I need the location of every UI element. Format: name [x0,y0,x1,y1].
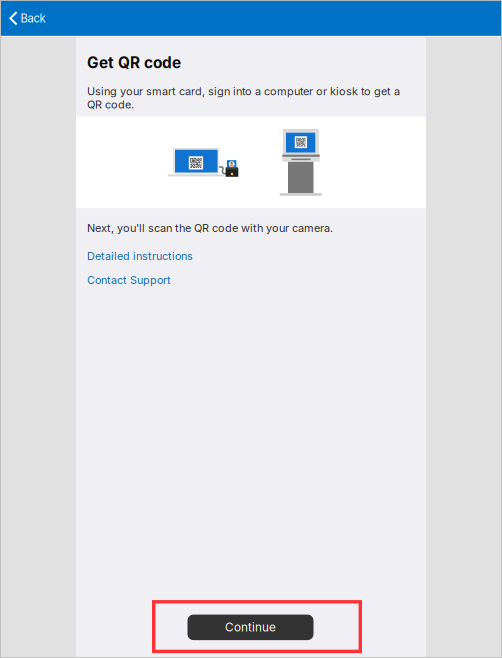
button[interactable]: Detailed instructions [87,246,207,266]
staticText: Continue [225,620,276,634]
staticText: Detailed instructions [87,250,193,263]
staticText: Using your smart card, sign into a compu… [87,85,400,111]
button[interactable]: Continue [187,615,313,640]
staticText: Back [20,12,45,25]
staticText: Next, you'll scan the QR code with your … [87,221,333,235]
button[interactable]: Back [1,1,81,36]
button[interactable]: Contact Support [87,270,182,290]
staticText: Contact Support [87,274,171,287]
staticText: Get QR code [87,53,181,72]
